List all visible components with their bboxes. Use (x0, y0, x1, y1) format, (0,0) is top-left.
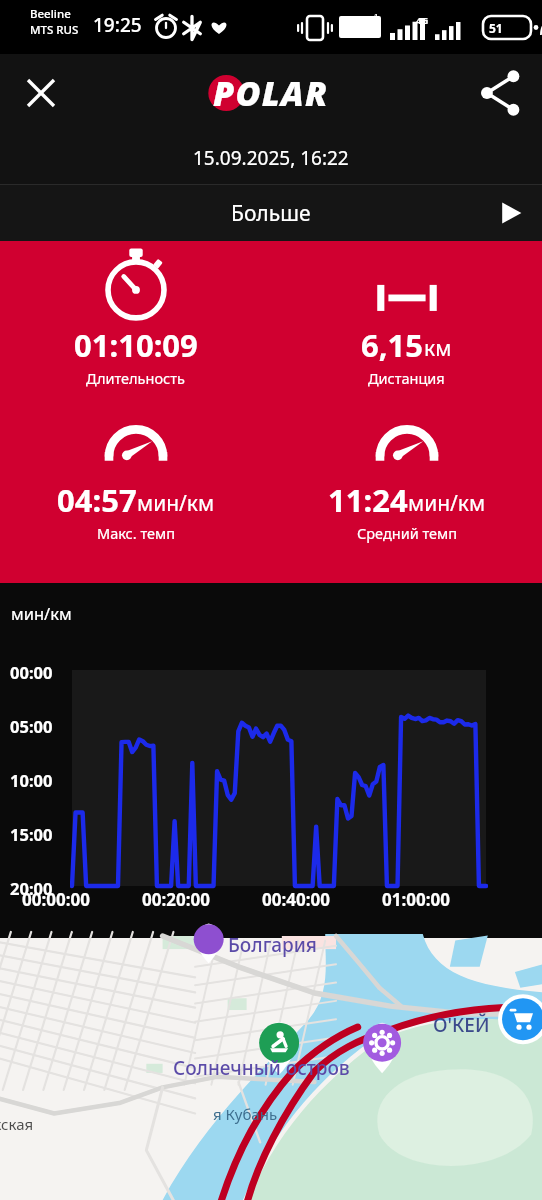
staticText: Больше (231, 199, 311, 228)
staticText: Длительность (86, 368, 185, 388)
button[interactable]: 11:24 (271, 415, 542, 543)
button[interactable]: 01:10:09 (0, 254, 271, 388)
staticText: мин/км (137, 489, 215, 518)
button[interactable]: POLAR (173, 70, 369, 116)
staticText: 01:00:00 (382, 888, 450, 911)
staticText: 19:25 (93, 12, 142, 38)
staticText: О'КЕЙ (433, 1012, 490, 1038)
staticText: 20:00 (10, 877, 53, 899)
staticText: Макс. темп (97, 523, 175, 543)
button[interactable]: Route map (0, 938, 542, 1200)
button[interactable]: 6,15 (271, 254, 542, 388)
staticText: 00:00 (10, 661, 53, 683)
button[interactable]: Close (12, 64, 70, 122)
staticText: 15.09.2025, 16:22 (193, 145, 349, 171)
staticText: 1 (374, 11, 379, 21)
staticText: 6,15 (361, 324, 424, 366)
staticText: 01:10:09 (74, 324, 198, 366)
staticText: MTS RUS (30, 22, 79, 38)
staticText: 00:00:00 (22, 888, 90, 911)
staticText: мин/км (408, 489, 486, 518)
staticText: Beeline (30, 6, 71, 22)
staticText: 04:57 (57, 479, 137, 521)
staticText: 11:24 (328, 479, 408, 521)
staticText: 10:00 (10, 769, 53, 791)
staticText: POLAR (213, 70, 329, 116)
staticText: жская (0, 1114, 34, 1134)
staticText: 00:40:00 (262, 888, 330, 911)
button[interactable]: Share (472, 64, 530, 122)
staticText: я Кубань (213, 1104, 278, 1124)
button[interactable]: Больше (0, 185, 542, 241)
button[interactable]: 04:57 (0, 415, 271, 543)
staticText: 51 (489, 20, 503, 36)
staticText: Средний темп (357, 523, 457, 543)
other: Next (495, 198, 525, 228)
staticText: 15:00 (10, 823, 53, 845)
staticText: мин/км (11, 602, 72, 624)
staticText: км (424, 334, 452, 363)
staticText: 4G (416, 14, 429, 27)
staticText: 00:20:00 (142, 888, 210, 911)
staticText: Болгария (228, 932, 317, 958)
staticText: Солнечный остров (173, 1055, 350, 1081)
button[interactable]: 15.09.2025, 16:22 (0, 132, 542, 184)
staticText: Дистанция (368, 368, 445, 388)
staticText: 05:00 (10, 715, 53, 737)
button[interactable]: мин/км (0, 583, 542, 938)
